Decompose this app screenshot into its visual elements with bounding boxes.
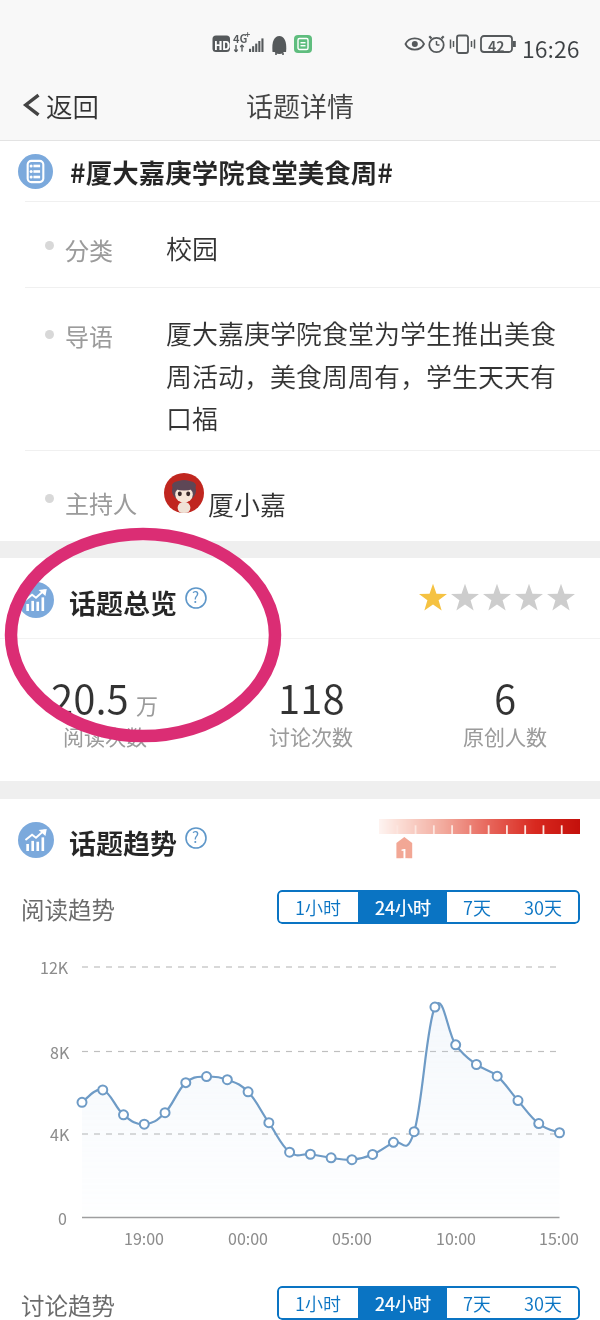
button[interactable]: 30天 xyxy=(506,1286,580,1320)
staticText: 阅读次数 xyxy=(63,721,147,751)
staticText: 8K xyxy=(50,1040,70,1063)
staticText: 话题总览 xyxy=(69,583,177,622)
button[interactable]: 7天 xyxy=(447,890,506,924)
staticText: 00:00 xyxy=(228,1226,268,1249)
staticText: 校园 xyxy=(166,229,219,267)
staticText: 1小时 xyxy=(295,894,341,920)
staticText: 30天 xyxy=(524,1290,562,1316)
staticText: 话题详情 xyxy=(246,86,354,125)
button[interactable]: #厦大嘉庚学院食堂美食周# xyxy=(0,141,600,201)
staticText: 厦小嘉 xyxy=(208,485,287,523)
staticText: #厦大嘉庚学院食堂美食周# xyxy=(70,152,393,190)
staticText: 0 xyxy=(58,1206,67,1229)
button[interactable]: 1小时 xyxy=(277,890,358,924)
staticText: HD xyxy=(214,37,231,53)
staticText: 原创人数 xyxy=(463,721,547,751)
staticText: 返回 xyxy=(46,86,99,124)
button[interactable]: 30天 xyxy=(506,890,580,924)
staticText: 118 xyxy=(278,668,345,726)
button[interactable]: 24小时 xyxy=(358,1286,447,1320)
staticText: 4G xyxy=(233,30,248,46)
staticText: 1 xyxy=(400,843,409,865)
button[interactable]: 7天 xyxy=(447,1286,506,1320)
staticText: 19:00 xyxy=(124,1226,164,1249)
staticText: 10:00 xyxy=(436,1226,476,1249)
staticText: 20.5 xyxy=(51,668,129,726)
staticText: 4K xyxy=(50,1122,70,1145)
staticText: 24小时 xyxy=(375,1290,431,1316)
staticText: 阅读趋势 xyxy=(21,892,115,926)
staticText: 7天 xyxy=(463,1290,491,1316)
staticText: 12K xyxy=(40,955,69,978)
staticText: 7天 xyxy=(463,894,491,920)
staticText: 导语 xyxy=(65,318,113,353)
button[interactable]: 24小时 xyxy=(358,890,447,924)
button[interactable]: 1小时 xyxy=(277,1286,358,1320)
staticText: 讨论趋势 xyxy=(21,1288,115,1320)
staticText: 16:26 xyxy=(522,31,580,64)
button[interactable]: 返回 xyxy=(10,70,109,140)
staticText: 话题趋势 xyxy=(69,823,177,862)
staticText: + xyxy=(245,28,251,41)
staticText: 分类 xyxy=(65,232,113,267)
staticText: 主持人 xyxy=(65,485,137,520)
staticText: 05:00 xyxy=(332,1226,372,1249)
staticText: 1小时 xyxy=(295,1290,341,1316)
staticText: 万 xyxy=(136,688,159,720)
staticText: 24小时 xyxy=(375,894,431,920)
staticText: ? xyxy=(192,826,200,848)
staticText: 6 xyxy=(494,668,517,726)
staticText: 厦大嘉庚学院食堂为学生推出美食周活动，美食周周有，学生天天有口福 xyxy=(166,314,566,436)
staticText: 15:00 xyxy=(539,1226,579,1249)
staticText: 42 xyxy=(488,36,505,56)
staticText: 讨论次数 xyxy=(269,721,353,751)
staticText: ? xyxy=(192,586,200,608)
staticText: 30天 xyxy=(524,894,562,920)
